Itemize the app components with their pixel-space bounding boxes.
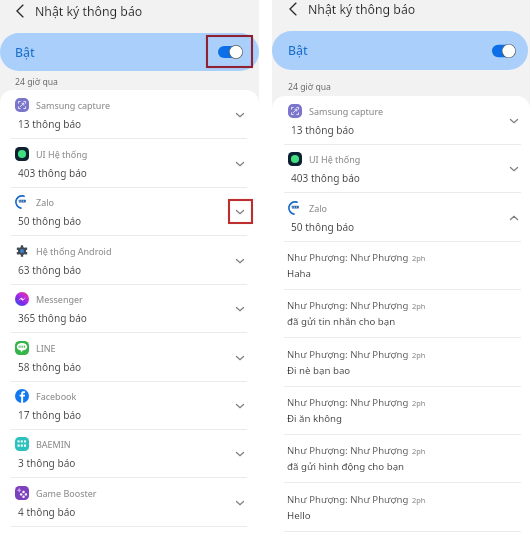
staticText: 63 thông báo bbox=[18, 263, 82, 277]
staticText: 2ph bbox=[412, 495, 426, 505]
staticText: Như Phượng: Như Phượng bbox=[287, 299, 409, 312]
staticText: Như Phượng: Như Phượng bbox=[287, 396, 409, 409]
button[interactable]: LINE bbox=[0, 334, 259, 382]
staticText: 24 giờ qua bbox=[15, 76, 58, 88]
button[interactable] bbox=[492, 44, 515, 58]
staticText: 4 thông báo bbox=[18, 505, 76, 519]
staticText: Messenger bbox=[36, 293, 83, 305]
staticText: BAEMIN bbox=[36, 438, 71, 450]
button[interactable]: Back bbox=[11, 2, 29, 20]
staticText: 50 thông báo bbox=[18, 214, 82, 228]
staticText: 2ph bbox=[412, 398, 426, 408]
staticText: 13 thông báo bbox=[18, 117, 82, 131]
staticText: Bật bbox=[288, 42, 308, 59]
button[interactable]: UI Hệ thống bbox=[272, 145, 530, 193]
staticText: 2ph bbox=[412, 350, 426, 360]
staticText: 2ph bbox=[412, 446, 426, 456]
staticText: Haha bbox=[287, 267, 312, 280]
button[interactable]: Back bbox=[284, 0, 302, 18]
staticText: Như Phượng: Như Phượng bbox=[287, 348, 409, 361]
button[interactable]: Bật bbox=[0, 33, 259, 71]
staticText: 13 thông báo bbox=[291, 123, 355, 137]
button[interactable]: Như Phượng: Như Phượng bbox=[272, 484, 530, 532]
button[interactable]: Như Phượng: Như Phượng bbox=[272, 435, 530, 483]
button[interactable]: Như Phượng: Như Phượng bbox=[272, 290, 530, 338]
staticText: 403 thông báo bbox=[291, 171, 360, 185]
staticText: Như Phượng: Như Phượng bbox=[287, 493, 409, 506]
staticText: Hệ thống Android bbox=[36, 245, 112, 257]
staticText: Samsung capture bbox=[309, 105, 384, 117]
button[interactable]: Zalo bbox=[272, 194, 530, 242]
button[interactable]: Như Phượng: Như Phượng bbox=[272, 242, 530, 290]
button[interactable]: Zalo bbox=[0, 188, 259, 236]
staticText: Đi nè bạn bao bbox=[287, 364, 351, 377]
staticText: 17 thông báo bbox=[18, 408, 82, 422]
staticText: Đi ăn không bbox=[287, 412, 342, 425]
staticText: Bật bbox=[15, 44, 35, 61]
staticText: Zalo bbox=[36, 196, 54, 208]
staticText: 2ph bbox=[412, 301, 426, 311]
button[interactable]: Như Phượng: Như Phượng bbox=[272, 387, 530, 435]
staticText: 3 thông báo bbox=[18, 456, 76, 470]
staticText: Nhật ký thông báo bbox=[308, 1, 416, 18]
button[interactable]: Messenger bbox=[0, 285, 259, 333]
button[interactable]: Samsung capture bbox=[272, 97, 530, 145]
staticText: Facebook bbox=[36, 390, 77, 402]
staticText: UI Hệ thống bbox=[36, 148, 88, 160]
staticText: 365 thông báo bbox=[18, 311, 87, 325]
button[interactable]: Như Phượng: Như Phượng bbox=[272, 339, 530, 387]
button[interactable]: Facebook bbox=[0, 382, 259, 430]
staticText: Zalo bbox=[309, 202, 327, 214]
button[interactable]: Game Booster bbox=[0, 479, 259, 527]
staticText: Samsung capture bbox=[36, 99, 111, 111]
staticText: 58 thông báo bbox=[18, 360, 82, 374]
staticText: Hello bbox=[287, 509, 311, 522]
button[interactable]: UI Hệ thống bbox=[0, 140, 259, 188]
staticText: 24 giờ qua bbox=[288, 81, 331, 93]
staticText: Nhật ký thông báo bbox=[35, 3, 143, 20]
staticText: đã gửi hình động cho bạn bbox=[287, 460, 405, 473]
staticText: Game Booster bbox=[36, 487, 97, 499]
staticText: Như Phượng: Như Phượng bbox=[287, 251, 409, 264]
staticText: Như Phượng: Như Phượng bbox=[287, 444, 409, 457]
staticText: 2ph bbox=[412, 253, 426, 263]
staticText: đã gửi tin nhắn cho bạn bbox=[287, 315, 396, 328]
staticText: 403 thông báo bbox=[18, 166, 87, 180]
button[interactable]: Samsung capture bbox=[0, 91, 259, 139]
button[interactable]: Bật bbox=[272, 31, 528, 70]
button[interactable] bbox=[218, 45, 242, 59]
staticText: LINE bbox=[36, 342, 56, 354]
button[interactable]: BAEMIN bbox=[0, 430, 259, 478]
staticText: UI Hệ thống bbox=[309, 153, 361, 165]
button[interactable]: Hệ thống Android bbox=[0, 237, 259, 285]
staticText: 50 thông báo bbox=[291, 220, 355, 234]
